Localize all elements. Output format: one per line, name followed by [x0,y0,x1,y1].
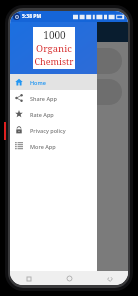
button[interactable]: Home [65,274,74,283]
button[interactable] [16,79,122,105]
button[interactable]: Rate App [10,106,97,122]
other: Privacy policy [15,126,23,134]
staticText: 1000 [43,28,66,42]
button[interactable]: More App [10,138,97,154]
staticText: More App [30,143,56,150]
other: Share App [15,94,23,102]
button[interactable] [16,48,122,74]
staticText: Rate App [30,111,54,118]
staticText: Chemistry [34,55,74,68]
other: Rate App [15,110,23,118]
staticText: Privacy policy [30,127,66,134]
button[interactable]: Recents [105,274,114,283]
button[interactable]: Share App [10,90,97,106]
button[interactable]: Home [10,74,97,90]
staticText: 5:38 PM [22,13,42,20]
staticText: Home [30,79,46,86]
other: More App [15,142,23,150]
staticText: Share App [30,95,57,102]
button[interactable]: Privacy policy [10,122,97,138]
other: Home [15,78,23,86]
button[interactable]: Back [24,274,33,283]
staticText: Organic [36,42,72,55]
